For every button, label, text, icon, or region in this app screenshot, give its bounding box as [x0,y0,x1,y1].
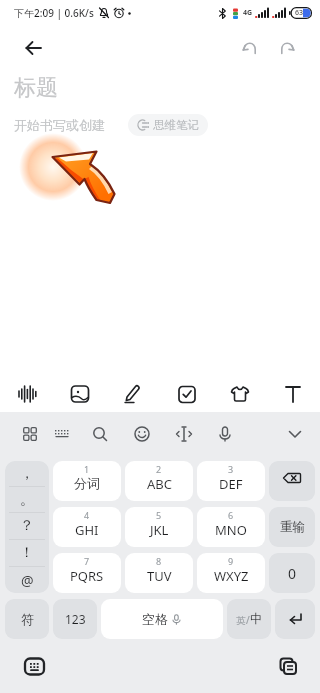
staticText: 7 [84,555,90,567]
button[interactable]: ， [5,461,49,486]
button[interactable] [275,653,301,679]
button[interactable] [274,35,300,61]
button[interactable]: 9 [197,553,265,593]
staticText: 3 [228,463,234,475]
button[interactable]: 6 [197,507,265,547]
staticText: 4G [243,8,253,18]
staticText: MNO [215,521,247,539]
button[interactable]: 7 [53,553,121,593]
staticText: 2 [156,463,162,475]
staticText: 4 [84,509,90,521]
button[interactable]: 5 [125,507,193,547]
staticText: ？ [20,517,34,535]
staticText: PQRS [70,567,104,585]
staticText: ！ [20,544,34,562]
staticText: ABC [147,475,172,493]
button[interactable] [121,382,145,406]
button[interactable] [283,422,307,446]
staticText: 5 [156,509,162,521]
staticText: 重输 [280,519,305,535]
button[interactable]: 英 [227,599,271,639]
button[interactable]: 。 [5,487,49,512]
button[interactable] [18,422,42,446]
button[interactable]: 思维笔记 [128,114,208,136]
button[interactable]: 0 [269,553,315,593]
staticText: WXYZ [214,567,249,585]
button[interactable]: ！ [5,540,49,566]
button[interactable]: 1 [53,461,121,501]
staticText: 9 [228,555,234,567]
staticText: 下午2:09 | 0.6K/s [14,6,94,20]
button[interactable]: 2 [125,461,193,501]
button[interactable] [213,422,237,446]
staticText: 开始书写或创建 [14,117,105,133]
staticText: 1 [84,463,90,475]
button[interactable] [130,422,154,446]
staticText: ， [20,465,34,483]
button[interactable] [175,382,199,406]
button[interactable] [228,382,252,406]
button[interactable]: 123 [53,599,97,639]
button[interactable] [269,461,315,501]
staticText: 。 [20,491,34,509]
button[interactable] [15,382,39,406]
button[interactable]: 符 [5,599,49,639]
staticText: / [246,613,250,627]
button[interactable] [236,35,262,61]
staticText: 8 [156,555,162,567]
button[interactable]: 8 [125,553,193,593]
button[interactable] [20,34,48,62]
button[interactable]: 重输 [269,507,315,547]
button[interactable]: 4 [53,507,121,547]
staticText: 63 [295,8,304,18]
button[interactable]: 3 [197,461,265,501]
button[interactable]: @ [5,567,49,593]
staticText: 思维笔记 [153,118,199,132]
staticText: 符 [21,611,34,627]
button[interactable] [281,382,305,406]
staticText: 6 [228,509,234,521]
button[interactable] [172,422,196,446]
staticText: 英 [236,615,246,627]
staticText: 0 [288,564,297,583]
staticText: 123 [65,611,86,627]
button[interactable] [68,382,92,406]
staticText: 空格 [142,611,168,627]
staticText: 分词 [74,475,100,491]
staticText: DEF [219,475,243,493]
staticText: 标题 [14,74,58,102]
button[interactable] [50,422,74,446]
staticText: @ [21,571,34,590]
button[interactable]: 空格 [101,599,223,639]
staticText: GHI [75,521,99,539]
button[interactable] [21,653,47,679]
staticText: TUV [147,567,172,585]
button[interactable] [88,422,112,446]
staticText: 中 [250,611,263,627]
button[interactable]: ？ [5,513,49,539]
staticText: JKL [150,521,169,539]
button[interactable] [275,599,315,639]
